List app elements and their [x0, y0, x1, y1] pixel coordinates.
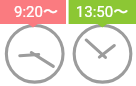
staticText: 13:50〜	[68, 3, 136, 22]
staticText: 9:20〜	[2, 3, 70, 22]
button[interactable]: 13:50〜	[68, 0, 136, 86]
button[interactable]: 9:20〜	[0, 0, 68, 86]
